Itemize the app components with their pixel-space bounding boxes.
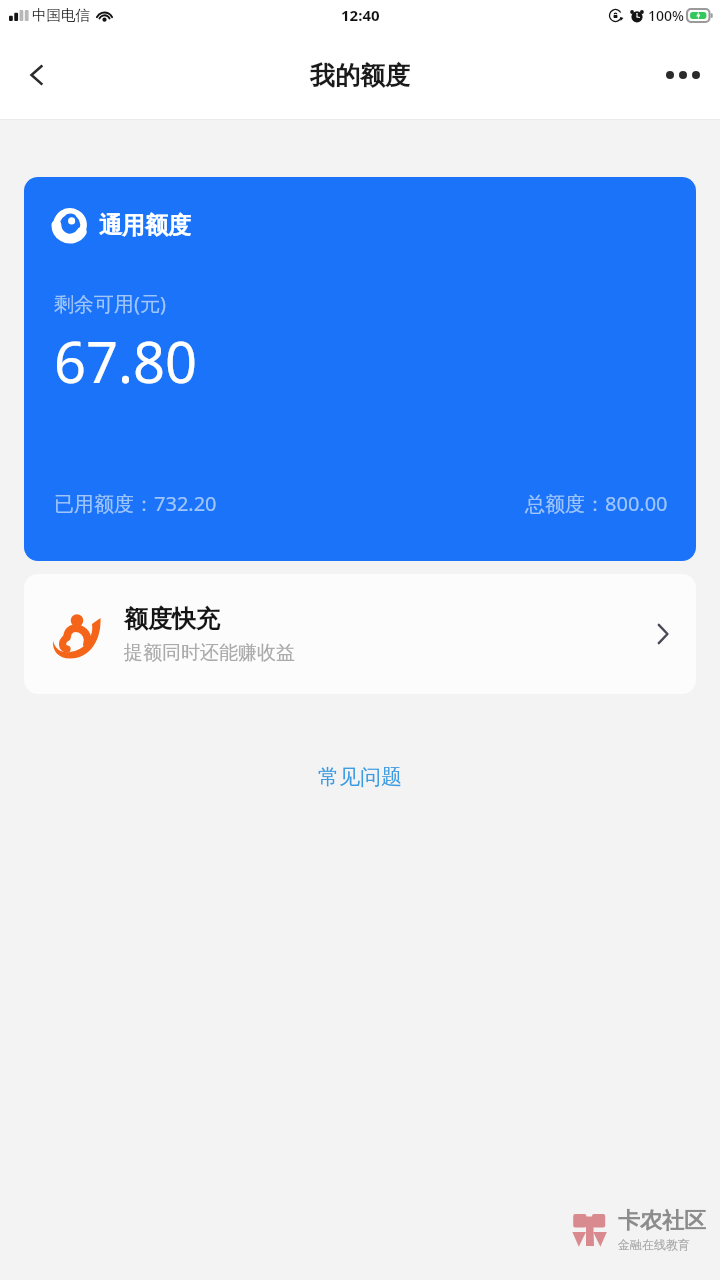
- staticText: 100%: [648, 6, 684, 25]
- staticText: 卡农社区: [618, 1207, 706, 1235]
- staticText: 常见问题: [318, 764, 402, 790]
- button[interactable]: Back: [10, 48, 64, 102]
- button[interactable]: 通用额度: [24, 177, 696, 561]
- button[interactable]: 常见问题: [306, 758, 414, 796]
- staticText: 额度快充: [124, 604, 220, 634]
- staticText: 12:40: [341, 5, 380, 25]
- staticText: 已用额度：732.20: [54, 490, 217, 517]
- staticText: 中国电信: [32, 6, 90, 24]
- staticText: 我的额度: [310, 60, 410, 91]
- button[interactable]: More options: [658, 50, 708, 100]
- staticText: 67.80: [54, 323, 198, 399]
- staticText: 剩余可用(元): [54, 290, 166, 317]
- staticText: 提额同时还能赚收益: [124, 641, 295, 665]
- staticText: 通用额度: [99, 211, 191, 240]
- staticText: 金融在线教育: [618, 1237, 690, 1252]
- staticText: 总额度：800.00: [525, 490, 668, 517]
- button[interactable]: 额度快充: [24, 574, 696, 694]
